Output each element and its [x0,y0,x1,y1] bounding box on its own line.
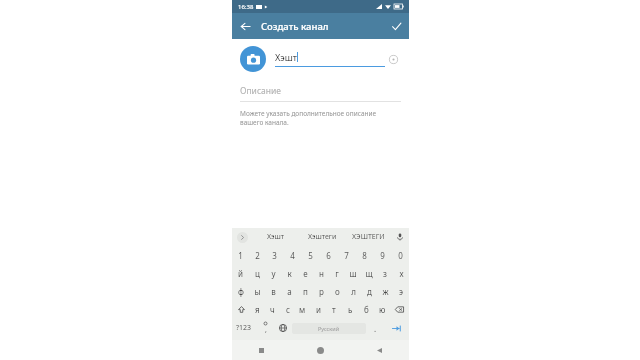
staticText: , [265,325,267,335]
staticText: Хэшт [275,51,297,63]
button[interactable]: е [297,264,313,282]
button[interactable]: Назад [350,340,409,360]
button[interactable]: н [313,264,329,282]
button[interactable]: Информация [385,51,401,67]
button[interactable]: 7 [337,246,355,264]
button[interactable]: Shift [232,300,250,318]
button[interactable]: ?123 [232,318,256,338]
button[interactable]: х [393,264,409,282]
button[interactable]: л [345,282,361,300]
button[interactable]: у [265,264,281,282]
button[interactable]: Недавние [232,340,291,360]
staticText: 0 [398,250,403,261]
button[interactable]: р [313,282,329,300]
button[interactable]: Установить фото [240,46,266,72]
button[interactable]: б [358,300,374,318]
staticText: е [303,268,308,279]
staticText: о [335,286,340,297]
button[interactable]: ш [345,264,361,282]
staticText: й [238,268,243,279]
staticText: 5 [308,250,313,261]
staticText: ж [382,286,389,297]
staticText: 1 [238,250,243,261]
button[interactable]: п [297,282,313,300]
button[interactable]: 5 [301,246,319,264]
button[interactable]: щ [361,264,377,282]
staticText: т [332,304,336,315]
button[interactable]: й [232,264,249,282]
button[interactable]: г [329,264,345,282]
staticText: Русский [318,325,340,332]
button[interactable]: з [377,264,393,282]
button[interactable]: Ввод [384,318,409,338]
staticText: Создать канал [261,20,329,33]
staticText: 2 [255,250,260,261]
button[interactable]: о [329,282,345,300]
button[interactable]: в [265,282,281,300]
button[interactable]: Запятая [256,318,274,338]
staticText: 9 [380,250,385,261]
staticText: л [351,286,356,297]
staticText: 3 [272,250,277,261]
button[interactable]: ф [232,282,249,300]
staticText: з [383,268,387,279]
button[interactable]: ХЭШТЕГИ [345,228,391,246]
staticText: у [271,268,276,279]
button[interactable]: 9 [373,246,391,264]
button[interactable]: ь [342,300,358,318]
button[interactable]: Главный экран [291,340,350,360]
staticText: 16:38 [238,3,254,11]
staticText: а [287,286,292,297]
button[interactable]: Русский [292,323,366,334]
staticText: 4 [290,250,295,261]
button[interactable]: Точка [366,318,384,338]
staticText: п [303,286,308,297]
button[interactable]: ю [374,300,390,318]
button[interactable]: Назад [232,13,258,39]
staticText: м [299,304,306,315]
staticText: 8 [362,250,367,261]
staticText: щ [365,268,373,279]
staticText: к [287,268,292,279]
button[interactable]: Голосовой ввод [391,228,409,246]
button[interactable]: э [393,282,409,300]
button[interactable]: ы [249,282,265,300]
staticText: б [364,304,369,315]
button[interactable]: ц [249,264,265,282]
button[interactable]: Готово [383,13,409,39]
staticText: х [399,268,404,279]
button[interactable]: я [250,300,265,318]
button[interactable]: к [281,264,297,282]
staticText: ш [349,268,357,279]
staticText: ?123 [236,323,252,333]
button[interactable]: с [280,300,295,318]
staticText: ч [270,304,275,315]
staticText: д [367,286,372,297]
button[interactable]: Хэштеги [299,228,345,246]
button[interactable]: и [310,300,326,318]
button[interactable]: Ещё [232,228,252,246]
staticText: . [374,323,377,334]
button[interactable]: Хэшт [252,228,299,246]
staticText: ы [254,286,261,297]
staticText: ю [379,304,386,315]
button[interactable]: 3 [266,246,283,264]
button[interactable]: Сменить язык [274,318,292,338]
button[interactable]: а [281,282,297,300]
button[interactable]: Удалить [390,300,409,318]
button[interactable]: д [361,282,377,300]
staticText: и [316,304,321,315]
button[interactable]: ж [377,282,393,300]
button[interactable]: 6 [319,246,337,264]
button[interactable]: 0 [391,246,409,264]
staticText: Хэштеги [308,232,337,242]
button[interactable]: 8 [355,246,373,264]
staticText: ц [255,268,260,279]
button[interactable]: 1 [232,246,249,264]
button[interactable]: ч [265,300,280,318]
button[interactable]: т [326,300,342,318]
button[interactable]: 4 [283,246,301,264]
button[interactable]: м [295,300,310,318]
staticText: с [286,304,290,315]
button[interactable]: 2 [249,246,266,264]
